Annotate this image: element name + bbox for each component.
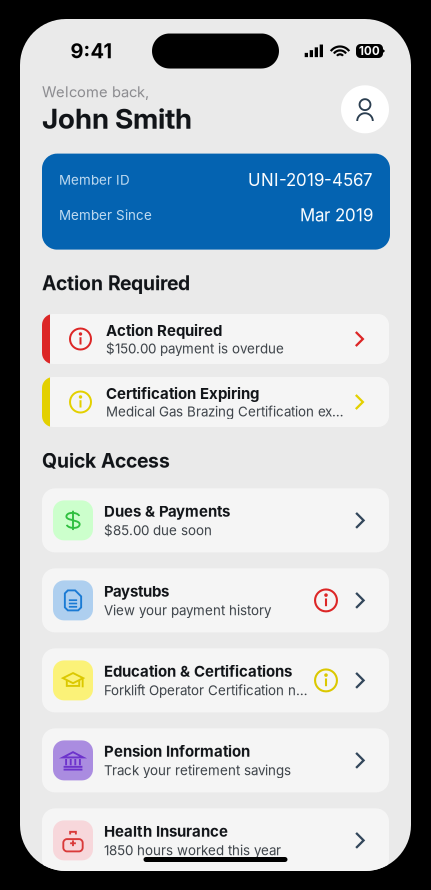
staticText: Member ID	[59, 172, 130, 188]
staticText: $85.00 due soon	[104, 522, 212, 538]
button[interactable]: Dues & Payments	[42, 488, 389, 552]
staticText: 100	[359, 44, 380, 58]
button[interactable]: Paystubs	[42, 568, 389, 632]
staticText: 9:41	[70, 39, 112, 63]
staticText: Pension Information	[104, 742, 250, 760]
staticText: Paystubs	[104, 582, 169, 600]
button[interactable]: Profile	[341, 85, 389, 133]
staticText: Action Required	[106, 321, 222, 339]
staticText: Quick Access	[42, 449, 170, 472]
staticText: Health Insurance	[104, 822, 228, 840]
staticText: Action Required	[42, 272, 190, 295]
staticText: UNI-2019-4567	[248, 170, 373, 190]
staticText: Welcome back,	[42, 83, 149, 101]
button[interactable]: Health Insurance	[42, 808, 389, 872]
staticText: Education & Certifications	[104, 662, 292, 680]
staticText: Dues & Payments	[104, 502, 230, 520]
staticText: Medical Gas Brazing Certification expiri…	[106, 403, 345, 420]
staticText: View your payment history	[104, 602, 271, 618]
button[interactable]: Education & Certifications	[42, 648, 389, 712]
staticText: Mar 2019	[300, 205, 373, 225]
staticText: $150.00 payment is overdue	[106, 340, 284, 357]
button[interactable]: Certification Expiring	[42, 377, 389, 427]
staticText: Certification Expiring	[106, 384, 259, 402]
staticText: John Smith	[42, 102, 192, 136]
staticText: Track your retirement savings	[104, 762, 291, 778]
staticText: Forklift Operator Certification ne...	[104, 682, 310, 698]
button[interactable]: Pension Information	[42, 728, 389, 792]
staticText: Member Since	[59, 207, 152, 223]
button[interactable]: Action Required	[42, 314, 389, 364]
staticText: 1850 hours worked this year	[104, 842, 281, 858]
